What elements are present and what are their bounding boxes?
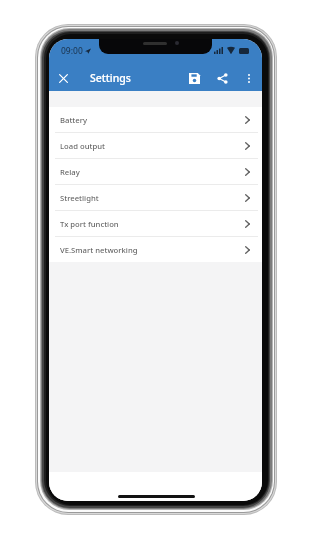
staticText: Load output — [60, 141, 105, 151]
staticText: Relay — [60, 167, 80, 177]
staticText: Streetlight — [60, 193, 99, 203]
staticText: VE.Smart networking — [60, 245, 138, 255]
staticText: Settings — [90, 71, 131, 85]
staticText: Battery — [60, 115, 88, 125]
button[interactable]: Save — [186, 70, 202, 86]
staticText: Tx port function — [60, 219, 119, 229]
button[interactable]: Load output — [49, 133, 262, 158]
button[interactable]: Tx port function — [49, 211, 262, 236]
button[interactable]: More options — [241, 70, 257, 86]
button[interactable]: VE.Smart networking — [49, 237, 262, 262]
button[interactable]: Close — [55, 70, 71, 86]
staticText: 09:00 — [61, 45, 83, 57]
button[interactable]: Share — [214, 70, 230, 86]
button[interactable]: Battery — [49, 107, 262, 132]
button[interactable]: Streetlight — [49, 185, 262, 210]
button[interactable]: Relay — [49, 159, 262, 184]
